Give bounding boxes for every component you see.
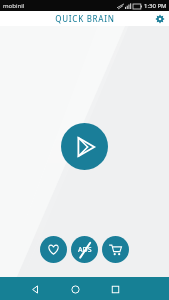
button[interactable]: Home (64, 278, 86, 300)
staticText: ADS (78, 245, 92, 255)
button[interactable]: Settings (154, 13, 166, 25)
button[interactable]: Favorites (40, 236, 67, 263)
staticText: 1:30 PM (144, 2, 167, 10)
button[interactable]: Shop (102, 236, 129, 263)
button[interactable]: Play (61, 123, 108, 170)
button[interactable]: Remove ads (71, 236, 98, 263)
button[interactable]: Back (24, 278, 46, 300)
button[interactable]: Recent apps (104, 278, 126, 300)
staticText: mobinil (3, 2, 25, 10)
staticText: QUICK BRAIN (55, 13, 115, 24)
